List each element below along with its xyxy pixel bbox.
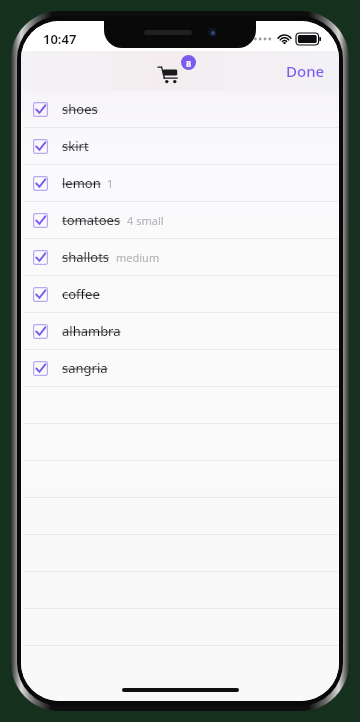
button[interactable]: lemon — [21, 165, 339, 201]
button[interactable]: shallots — [21, 239, 339, 275]
staticText: shoes — [62, 100, 98, 118]
staticText: 1 — [107, 176, 114, 191]
staticText: lemon — [62, 174, 101, 192]
button[interactable]: alhambra — [21, 313, 339, 349]
staticText: skirt — [62, 137, 89, 155]
staticText: 4 small — [127, 213, 164, 228]
staticText: coffee — [62, 285, 100, 303]
staticText: tomatoes — [62, 211, 121, 229]
button[interactable]: Shopping cart, 8 items — [157, 54, 197, 88]
staticText: shallots — [62, 248, 110, 266]
button[interactable]: Done — [272, 54, 339, 88]
staticText: medium — [116, 250, 160, 265]
button[interactable]: skirt — [21, 128, 339, 164]
staticText: 10:47 — [43, 30, 77, 48]
staticText: alhambra — [62, 322, 121, 340]
staticText: sangria — [62, 359, 108, 377]
staticText: Done — [286, 61, 325, 81]
button[interactable] — [21, 646, 339, 675]
staticText: 8 — [186, 57, 192, 69]
button[interactable]: shoes — [21, 91, 339, 127]
button[interactable]: sangria — [21, 350, 339, 386]
button[interactable]: coffee — [21, 276, 339, 312]
button[interactable]: tomatoes — [21, 202, 339, 238]
